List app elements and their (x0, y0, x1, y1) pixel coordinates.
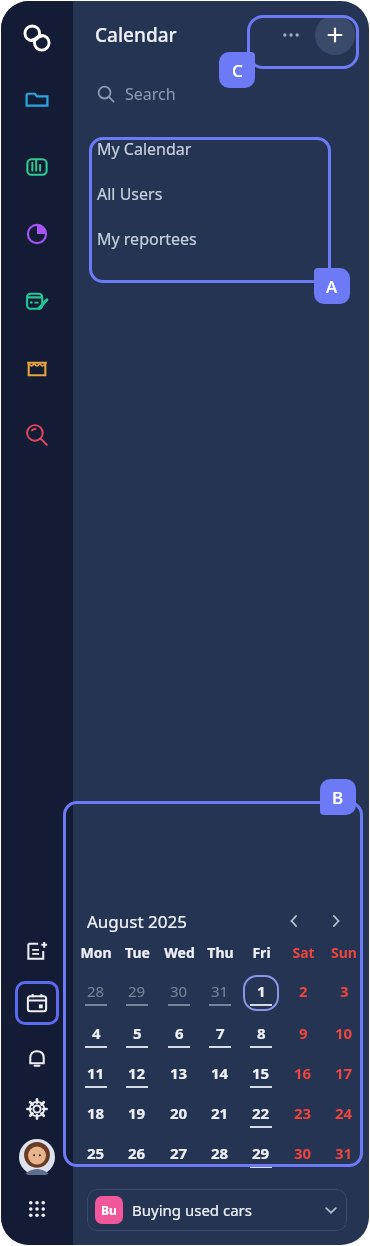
staticText: 29 (128, 981, 146, 1001)
button[interactable]: Search tool (15, 413, 59, 457)
staticText: Buying used cars (132, 1200, 252, 1220)
button[interactable]: 6 (157, 1015, 201, 1055)
staticText: 30 (170, 981, 188, 1001)
button[interactable]: 30 (157, 971, 201, 1015)
button[interactable]: Apps (15, 1187, 59, 1231)
staticText: August 2025 (87, 910, 187, 933)
staticText: 2 (299, 981, 308, 1001)
staticText: My Calendar (97, 138, 192, 160)
staticText: 6 (175, 1023, 184, 1043)
button[interactable]: 27 (157, 1135, 201, 1175)
button[interactable]: Files (15, 78, 59, 122)
button[interactable]: Reports (15, 212, 59, 256)
button[interactable]: 8 (239, 1015, 283, 1055)
button[interactable]: 1 (239, 971, 283, 1015)
button[interactable]: Marketplace (15, 346, 59, 390)
button[interactable]: 19 (115, 1095, 159, 1135)
staticText: 12 (128, 1063, 146, 1083)
button[interactable]: 29 (115, 971, 159, 1015)
button[interactable]: 5 (115, 1015, 159, 1055)
staticText: 20 (170, 1103, 188, 1123)
staticText: Sat (292, 943, 315, 962)
button[interactable]: 29 (239, 1135, 283, 1175)
button[interactable]: 28 (198, 1135, 242, 1175)
staticText: 28 (87, 981, 105, 1001)
button[interactable]: Analytics (15, 145, 59, 189)
staticText: 30 (294, 1143, 312, 1163)
staticText: C (232, 59, 243, 82)
staticText: 14 (211, 1063, 229, 1083)
staticText: 28 (211, 1143, 229, 1163)
staticText: Tue (125, 943, 150, 962)
button[interactable]: 30 (281, 1135, 325, 1175)
button[interactable]: 3 (322, 971, 366, 1015)
button[interactable]: Next month (321, 906, 351, 936)
staticText: B (332, 786, 344, 809)
button[interactable]: 26 (115, 1135, 159, 1175)
staticText: 21 (211, 1103, 229, 1123)
staticText: 15 (252, 1063, 270, 1083)
staticText: Bu (101, 1202, 117, 1218)
staticText: 24 (335, 1103, 353, 1123)
staticText: 10 (335, 1023, 353, 1043)
staticText: 31 (211, 981, 229, 1001)
button[interactable]: Notes (15, 279, 59, 323)
button[interactable]: 17 (322, 1055, 366, 1095)
staticText: 5 (133, 1023, 142, 1043)
staticText: 29 (252, 1143, 270, 1163)
button[interactable]: 28 (74, 971, 118, 1015)
button[interactable]: My Calendar (73, 126, 369, 171)
staticText: 26 (128, 1143, 146, 1163)
button[interactable]: Settings (15, 1087, 59, 1131)
staticText: My reportees (97, 228, 197, 250)
button[interactable]: 9 (281, 1015, 325, 1055)
button[interactable]: 11 (74, 1055, 118, 1095)
button[interactable]: 12 (115, 1055, 159, 1095)
button[interactable]: Calendar (15, 981, 59, 1025)
staticText: 1 (257, 981, 266, 1001)
button[interactable]: 15 (239, 1055, 283, 1095)
button[interactable]: 24 (322, 1095, 366, 1135)
staticText: Calendar (95, 22, 177, 48)
staticText: 9 (299, 1023, 308, 1043)
staticText: 31 (335, 1143, 353, 1163)
button[interactable]: 18 (74, 1095, 118, 1135)
staticText: 11 (87, 1063, 105, 1083)
button[interactable]: 10 (322, 1015, 366, 1055)
button[interactable]: 31 (322, 1135, 366, 1175)
button[interactable]: 23 (281, 1095, 325, 1135)
button[interactable]: Zoho (17, 18, 57, 58)
staticText: A (326, 275, 338, 298)
button[interactable]: 20 (157, 1095, 201, 1135)
button[interactable]: 4 (74, 1015, 118, 1055)
staticText: 13 (170, 1063, 188, 1083)
button[interactable]: 7 (198, 1015, 242, 1055)
button[interactable]: 14 (198, 1055, 242, 1095)
button[interactable]: 21 (198, 1095, 242, 1135)
staticText: Search (125, 83, 176, 105)
button[interactable]: 13 (157, 1055, 201, 1095)
button[interactable]: Profile (17, 1137, 57, 1177)
button[interactable]: More options (271, 15, 311, 55)
button[interactable]: 22 (239, 1095, 283, 1135)
staticText: 25 (87, 1143, 105, 1163)
staticText: 7 (216, 1023, 225, 1043)
button[interactable]: 2 (281, 971, 325, 1015)
button[interactable]: Previous month (279, 906, 309, 936)
button[interactable]: Add event (315, 15, 355, 55)
staticText: 22 (252, 1103, 270, 1123)
button[interactable]: New entry (15, 929, 59, 973)
button[interactable]: Bu (87, 1189, 347, 1231)
button[interactable]: Search (97, 69, 369, 119)
staticText: 16 (294, 1063, 312, 1083)
staticText: 8 (257, 1023, 266, 1043)
button[interactable]: 31 (198, 971, 242, 1015)
button[interactable]: 25 (74, 1135, 118, 1175)
button[interactable]: 16 (281, 1055, 325, 1095)
button[interactable]: All Users (73, 171, 369, 216)
button[interactable]: Notifications (15, 1037, 59, 1081)
staticText: Sun (331, 943, 357, 962)
staticText: 4 (92, 1023, 101, 1043)
staticText: Thu (207, 943, 234, 962)
button[interactable]: My reportees (73, 216, 369, 261)
